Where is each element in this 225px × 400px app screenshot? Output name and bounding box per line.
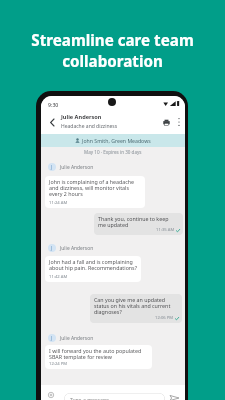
staticText: Julie Anderson <box>61 113 102 121</box>
button[interactable]: J <box>48 334 94 342</box>
button[interactable]: I will forward you the auto populated SB… <box>45 345 152 369</box>
staticText: Headache and dizziness <box>61 123 118 130</box>
staticText: J <box>51 245 53 252</box>
staticText: Type a message <box>70 396 109 400</box>
staticText: Thank you, continue to keep me updated <box>98 215 170 229</box>
staticText: 9:30 <box>48 101 59 108</box>
staticText: 12:24 PM <box>49 361 68 367</box>
staticText: 11:24 AM <box>49 200 68 206</box>
button[interactable]: Add attachment <box>45 385 57 400</box>
staticText: Streamline care team collaboration <box>0 30 225 72</box>
button[interactable]: John is complaining of a headache and di… <box>45 176 145 208</box>
button[interactable]: John had a fall and is complaining about… <box>45 256 141 282</box>
staticText: Julie Anderson <box>60 245 94 252</box>
button[interactable]: J <box>48 163 94 171</box>
staticText: May 10 · Expires in 30 days <box>84 149 142 155</box>
button[interactable]: Type a message <box>64 393 165 400</box>
staticText: 12:06 PM <box>155 315 174 321</box>
button[interactable]: More options <box>173 110 185 134</box>
button[interactable]: Thank you, continue to keep me updated <box>94 213 183 235</box>
staticText: Julie Anderson <box>60 335 94 342</box>
button[interactable]: Send <box>168 395 180 400</box>
button[interactable]: Back <box>45 110 59 134</box>
staticText: J <box>51 164 53 171</box>
staticText: John is complaining of a headache and di… <box>49 178 142 198</box>
button[interactable]: J <box>48 244 94 252</box>
staticText: J <box>51 335 53 342</box>
button[interactable]: Can you give me an updated status on his… <box>90 294 182 323</box>
button[interactable]: Patient chart <box>160 110 173 134</box>
staticText: 11:35 AM <box>156 227 175 233</box>
staticText: Julie Anderson <box>60 164 94 171</box>
staticText: John Smith, Green Meadows <box>82 137 151 144</box>
staticText: John had a fall and is complaining about… <box>49 258 141 272</box>
staticText: I will forward you the auto populated SB… <box>49 347 149 361</box>
staticText: 11:42 AM <box>49 274 68 280</box>
staticText: Can you give me an updated status on his… <box>94 296 179 316</box>
